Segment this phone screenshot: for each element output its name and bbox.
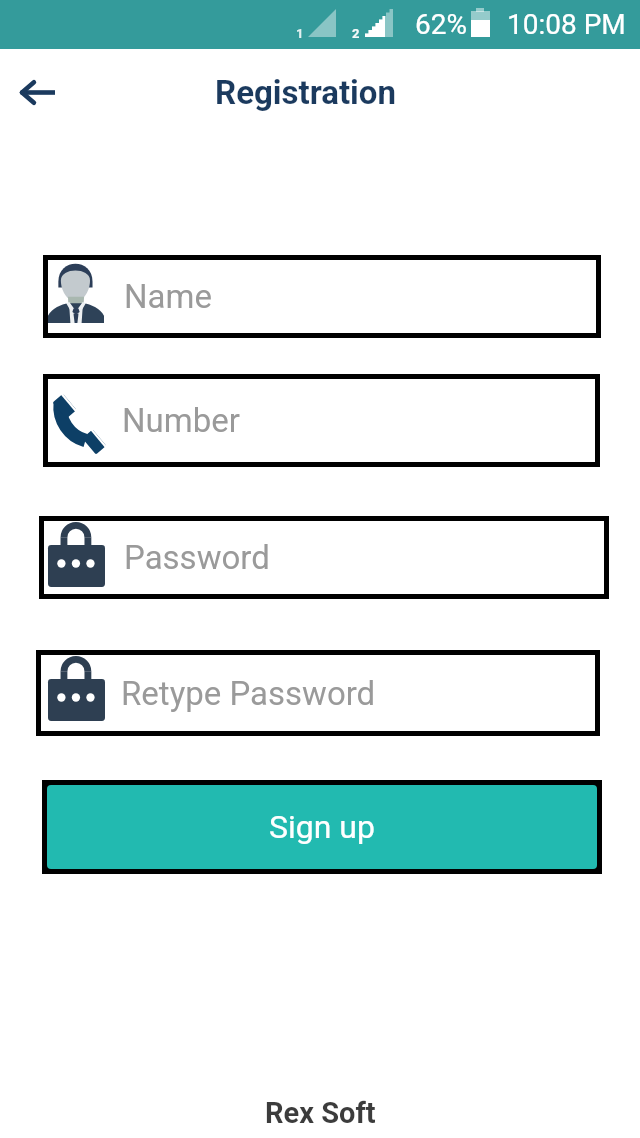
staticText: Number — [122, 401, 240, 440]
staticText: Password — [124, 538, 270, 577]
staticText: Name — [124, 277, 212, 316]
button[interactable]: Back — [10, 64, 66, 120]
staticText: Retype Password — [121, 674, 376, 713]
staticText: 62% — [415, 8, 467, 41]
staticText: 1 — [296, 26, 304, 41]
staticText: 10:08 PM — [507, 8, 626, 41]
staticText: Registration — [215, 73, 396, 112]
button[interactable]: Sign up — [47, 785, 597, 869]
staticText: Rex Soft — [265, 1096, 376, 1130]
button[interactable]: Retype Password — [41, 655, 595, 731]
button[interactable]: Number — [48, 379, 595, 462]
button[interactable]: Name — [48, 260, 596, 333]
button[interactable]: Password — [44, 521, 604, 594]
staticText: Sign up — [269, 808, 375, 846]
staticText: 2 — [352, 26, 360, 41]
